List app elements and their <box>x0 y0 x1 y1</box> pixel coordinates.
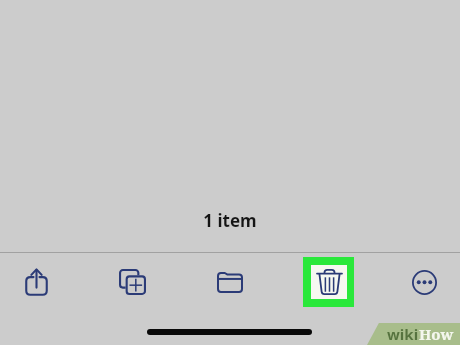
button[interactable]: Move to folder <box>208 258 252 306</box>
button[interactable]: More options <box>402 258 446 306</box>
button[interactable]: Share <box>14 258 58 306</box>
staticText: 1 item <box>0 209 460 232</box>
button[interactable]: Delete <box>303 257 354 307</box>
staticText: How <box>419 324 454 344</box>
staticText: wiki <box>387 324 419 344</box>
button[interactable]: Duplicate <box>110 258 154 306</box>
